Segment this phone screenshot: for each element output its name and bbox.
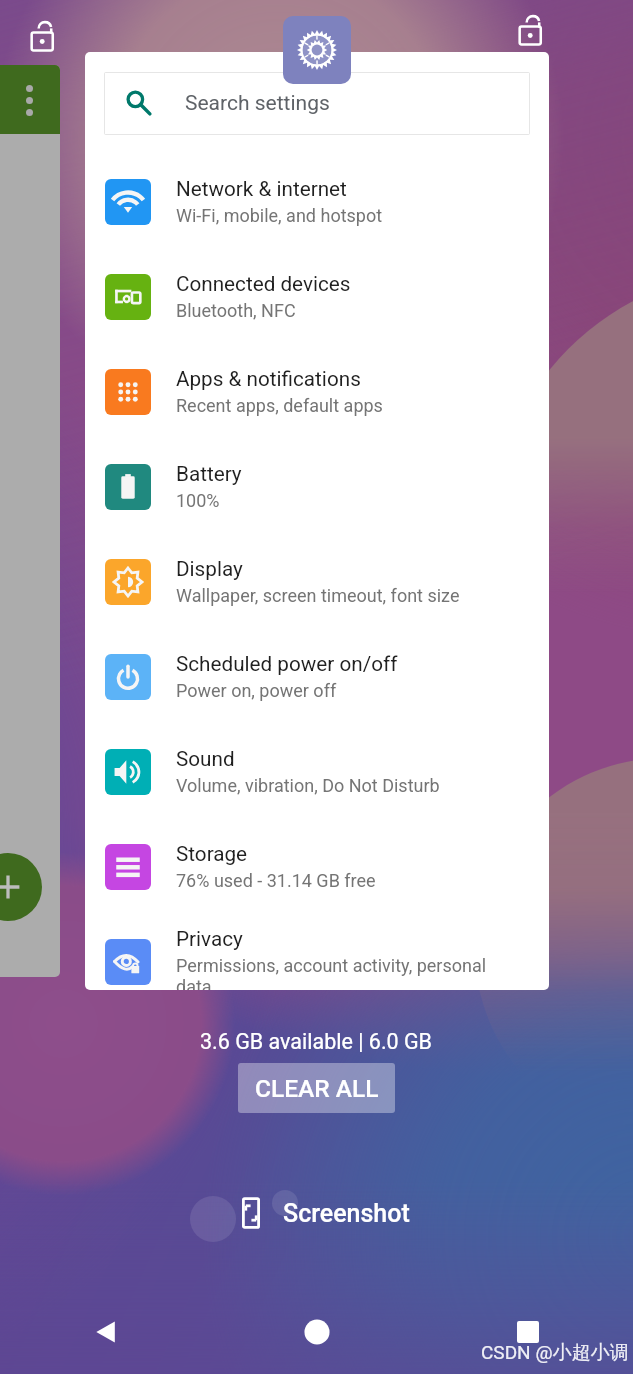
button[interactable]: Unlock task	[511, 11, 545, 45]
button[interactable]: Privacy	[85, 914, 549, 990]
staticText: Wallpaper, screen timeout, font size	[176, 585, 460, 606]
button[interactable]: Sound	[85, 724, 549, 819]
button[interactable]	[0, 65, 60, 977]
button[interactable]: Home	[295, 1310, 339, 1354]
staticText: Permissions, account activity, personal …	[176, 955, 494, 990]
button[interactable]: Back	[84, 1310, 128, 1354]
staticText: Apps & notifications	[176, 367, 361, 391]
button[interactable]: Apps & notifications	[85, 344, 549, 439]
staticText: Battery	[176, 462, 242, 486]
staticText: Volume, vibration, Do Not Disturb	[176, 775, 440, 796]
button[interactable]: Display	[85, 534, 549, 629]
button[interactable]: Connected devices	[85, 249, 549, 344]
button[interactable]: Recents	[506, 1310, 550, 1354]
staticText: CSDN @小超小调	[481, 1341, 629, 1365]
staticText: Storage	[176, 842, 248, 866]
staticText: Screenshot	[283, 1199, 410, 1228]
staticText: Search settings	[185, 91, 330, 116]
button[interactable]: Search settings	[85, 52, 549, 990]
button[interactable]: Storage	[85, 819, 549, 914]
staticText: 76% used - 31.14 GB free	[176, 870, 376, 891]
staticText: Power on, power off	[176, 680, 337, 701]
button[interactable]: Scheduled power on/off	[85, 629, 549, 724]
button[interactable]: Search settings	[105, 73, 529, 134]
staticText: Display	[176, 557, 243, 581]
button[interactable]: Unlock task	[23, 17, 57, 51]
staticText: 100%	[176, 490, 220, 511]
staticText: Connected devices	[176, 272, 351, 296]
button[interactable]: Screenshot	[231, 1193, 398, 1233]
button[interactable]: Settings app	[283, 16, 351, 84]
staticText: Privacy	[176, 927, 243, 951]
staticText: Scheduled power on/off	[176, 652, 398, 676]
staticText: 3.6 GB available | 6.0 GB	[200, 1029, 433, 1054]
button[interactable]: CLEAR ALL	[238, 1063, 395, 1113]
staticText: Network & internet	[176, 177, 347, 201]
staticText: Bluetooth, NFC	[176, 300, 296, 321]
staticText: Wi-Fi, mobile, and hotspot	[176, 205, 383, 226]
staticText: Sound	[176, 747, 235, 771]
staticText: Recent apps, default apps	[176, 395, 383, 416]
button[interactable]: Battery	[85, 439, 549, 534]
staticText: CLEAR ALL	[255, 1074, 379, 1103]
button[interactable]: Network & internet	[85, 154, 549, 249]
